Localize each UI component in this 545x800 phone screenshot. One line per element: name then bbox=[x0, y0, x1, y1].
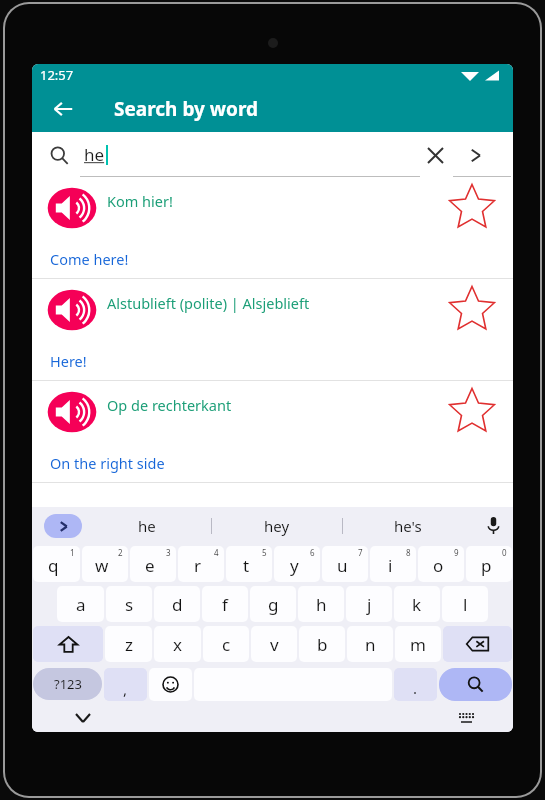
button[interactable]: Hide keyboard bbox=[70, 705, 96, 731]
staticText: h bbox=[316, 593, 327, 616]
staticText: Here! bbox=[50, 351, 87, 371]
button[interactable]: f bbox=[202, 586, 248, 622]
button[interactable]: Favourite bbox=[443, 383, 501, 441]
staticText: he bbox=[84, 143, 105, 166]
button[interactable]: v bbox=[251, 626, 297, 662]
button[interactable]: Search bbox=[439, 668, 512, 701]
button[interactable]: Emoji bbox=[149, 668, 192, 701]
button[interactable]: e bbox=[130, 546, 176, 582]
staticText: w bbox=[95, 554, 109, 577]
button[interactable]: Play pronunciation bbox=[45, 287, 99, 333]
button[interactable]: hey bbox=[212, 507, 342, 544]
button[interactable]: y bbox=[274, 546, 320, 582]
staticText: k bbox=[412, 593, 422, 616]
staticText: f bbox=[222, 593, 228, 616]
button[interactable]: Clear bbox=[415, 135, 455, 175]
button[interactable]: Go bbox=[455, 135, 495, 175]
button[interactable]: Change keyboard bbox=[453, 705, 479, 731]
button[interactable]: Play pronunciation bbox=[45, 389, 99, 435]
button[interactable]: o bbox=[418, 546, 464, 582]
button[interactable]: q bbox=[33, 546, 80, 582]
button[interactable]: , bbox=[104, 668, 147, 701]
staticText: q bbox=[48, 554, 59, 577]
button[interactable]: d bbox=[154, 586, 200, 622]
staticText: g bbox=[268, 593, 279, 616]
button[interactable]: j bbox=[346, 586, 392, 622]
button[interactable]: z bbox=[105, 626, 152, 662]
button[interactable]: x bbox=[154, 626, 201, 662]
staticText: y bbox=[290, 554, 299, 577]
button[interactable]: i bbox=[370, 546, 416, 582]
staticText: Search by word bbox=[114, 96, 259, 122]
staticText: Kom hier! bbox=[107, 191, 443, 211]
staticText: hey bbox=[264, 516, 290, 536]
staticText: 6 bbox=[310, 547, 315, 558]
staticText: j bbox=[367, 593, 372, 616]
button[interactable]: p bbox=[466, 546, 512, 582]
button[interactable]: g bbox=[250, 586, 296, 622]
button[interactable]: m bbox=[395, 626, 441, 662]
button[interactable]: Play pronunciation bbox=[32, 177, 513, 278]
button[interactable]: Backspace bbox=[443, 626, 512, 662]
staticText: e bbox=[145, 554, 155, 577]
staticText: i bbox=[388, 554, 393, 577]
staticText: 0 bbox=[502, 547, 507, 558]
button[interactable]: a bbox=[57, 586, 104, 622]
staticText: a bbox=[76, 593, 86, 616]
staticText: 3 bbox=[166, 547, 171, 558]
staticText: Op de rechterkant bbox=[107, 395, 443, 415]
button[interactable]: he's bbox=[343, 507, 473, 544]
button[interactable]: c bbox=[203, 626, 249, 662]
staticText: On the right side bbox=[50, 453, 165, 473]
staticText: u bbox=[337, 554, 348, 577]
button[interactable]: he bbox=[82, 507, 211, 544]
staticText: Alstublieft (polite) | Alsjeblieft bbox=[107, 293, 443, 313]
button[interactable]: r bbox=[178, 546, 224, 582]
staticText: 9 bbox=[454, 547, 459, 558]
button[interactable]: Voice input bbox=[473, 507, 513, 544]
staticText: r bbox=[194, 554, 202, 577]
staticText: n bbox=[365, 633, 376, 656]
button[interactable]: Search bbox=[44, 140, 74, 170]
button[interactable]: s bbox=[106, 586, 152, 622]
staticText: 5 bbox=[262, 547, 267, 558]
staticText: 7 bbox=[358, 547, 363, 558]
staticText: 8 bbox=[406, 547, 411, 558]
staticText: m bbox=[410, 633, 426, 656]
staticText: c bbox=[222, 633, 231, 656]
staticText: x bbox=[173, 633, 182, 656]
button[interactable]: b bbox=[299, 626, 345, 662]
staticText: ?123 bbox=[54, 675, 82, 693]
staticText: Come here! bbox=[50, 249, 129, 269]
staticText: 12:57 bbox=[40, 66, 74, 84]
staticText: he's bbox=[394, 516, 422, 536]
staticText: l bbox=[463, 593, 468, 616]
staticText: s bbox=[125, 593, 134, 616]
button[interactable]: Favourite bbox=[443, 179, 501, 237]
button[interactable]: h bbox=[298, 586, 344, 622]
button[interactable]: Shift bbox=[33, 626, 103, 662]
button[interactable]: t bbox=[226, 546, 272, 582]
staticText: t bbox=[243, 554, 250, 577]
button[interactable]: . bbox=[394, 668, 437, 701]
button[interactable]: k bbox=[394, 586, 440, 622]
button[interactable]: n bbox=[347, 626, 393, 662]
staticText: 4 bbox=[214, 547, 219, 558]
button[interactable]: ?123 bbox=[33, 668, 102, 700]
staticText: o bbox=[433, 554, 444, 577]
button[interactable]: Play pronunciation bbox=[45, 185, 99, 231]
button[interactable]: More suggestions bbox=[44, 514, 82, 538]
button[interactable]: Favourite bbox=[443, 281, 501, 339]
button[interactable]: Play pronunciation bbox=[32, 381, 513, 482]
button[interactable]: w bbox=[82, 546, 128, 582]
staticText: , bbox=[123, 679, 128, 699]
staticText: he bbox=[138, 516, 156, 536]
staticText: p bbox=[481, 554, 492, 577]
staticText: . bbox=[413, 678, 418, 698]
button[interactable]: Play pronunciation bbox=[32, 279, 513, 380]
button[interactable]: Back bbox=[46, 92, 80, 126]
staticText: 2 bbox=[118, 547, 123, 558]
button[interactable]: l bbox=[442, 586, 488, 622]
button[interactable]: u bbox=[322, 546, 368, 582]
